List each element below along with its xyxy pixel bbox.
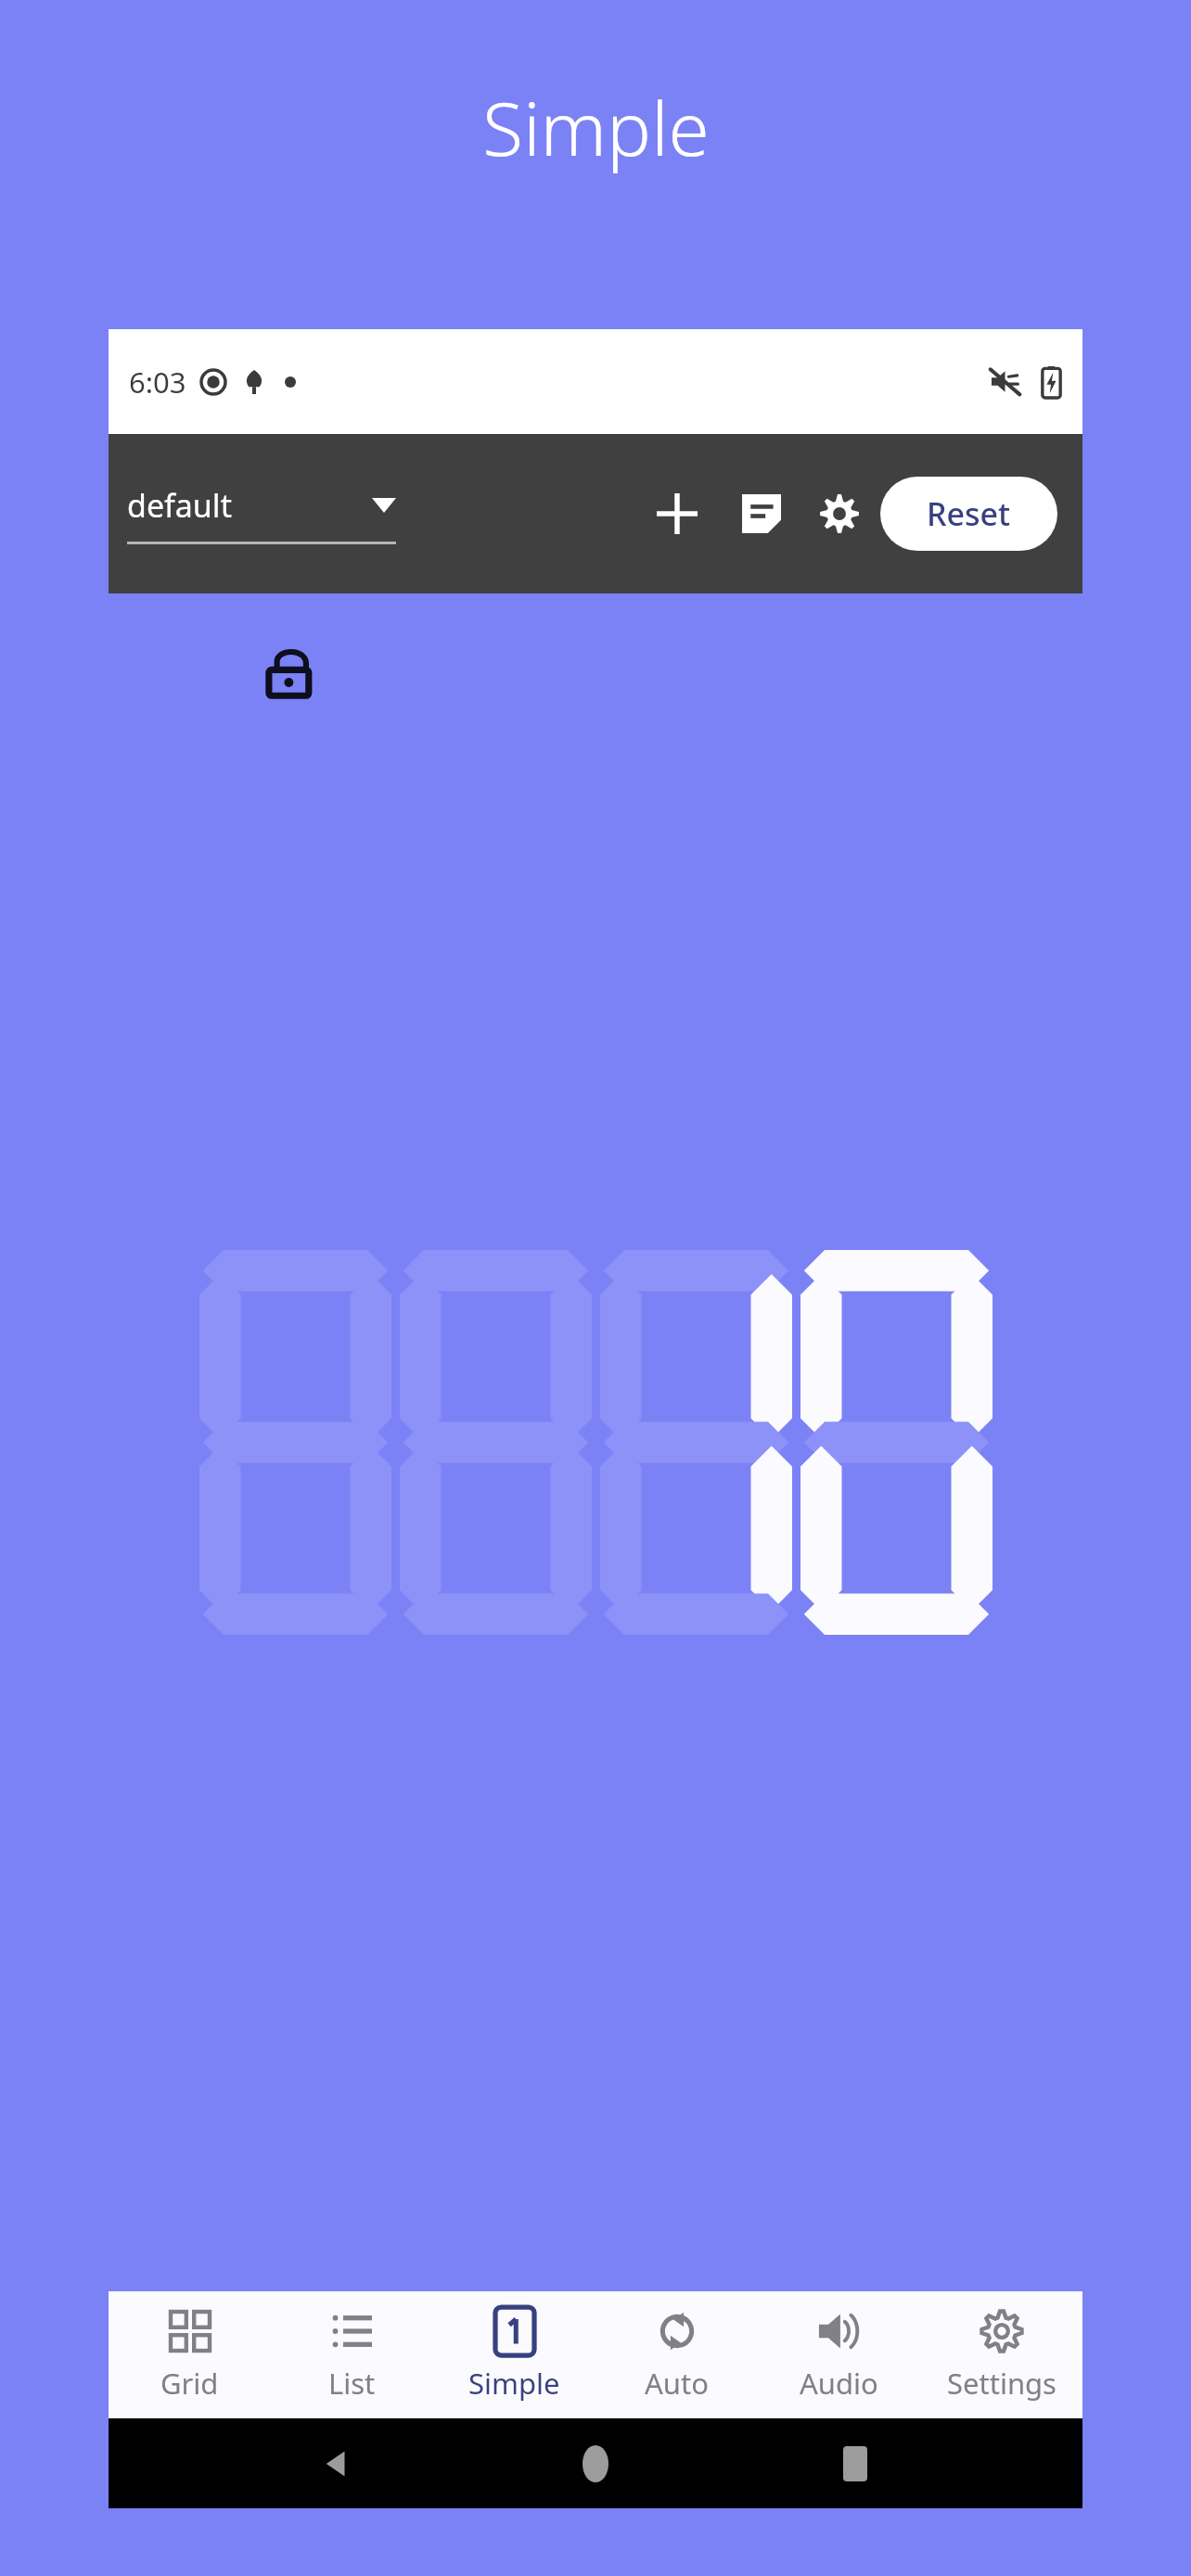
- button[interactable]: List: [271, 2291, 433, 2418]
- staticText: 6:03: [129, 363, 186, 402]
- button[interactable]: Settings: [806, 480, 873, 547]
- staticText: Settings: [947, 2364, 1057, 2403]
- button[interactable]: Simple: [433, 2291, 595, 2418]
- staticText: Simple: [468, 2364, 560, 2403]
- button[interactable]: Recents: [823, 2431, 888, 2496]
- button[interactable]: Settings: [920, 2291, 1082, 2418]
- button[interactable]: Notes: [728, 480, 795, 547]
- staticText: Auto: [645, 2364, 709, 2403]
- button[interactable]: Reset: [880, 477, 1057, 551]
- staticText: Audio: [800, 2364, 878, 2403]
- staticText: Grid: [160, 2364, 219, 2403]
- button[interactable]: Back: [303, 2431, 368, 2496]
- staticText: Reset: [927, 492, 1011, 535]
- button[interactable]: Grid: [109, 2291, 271, 2418]
- button[interactable]: Unlock: [262, 643, 325, 706]
- button[interactable]: Audio: [758, 2291, 920, 2418]
- button[interactable]: Home: [563, 2431, 628, 2496]
- staticText: default: [127, 484, 232, 527]
- button[interactable]: Add: [641, 478, 713, 550]
- staticText: Simple: [482, 76, 710, 177]
- staticText: List: [328, 2364, 376, 2403]
- button[interactable]: default: [127, 434, 396, 593]
- button[interactable]: Auto: [595, 2291, 758, 2418]
